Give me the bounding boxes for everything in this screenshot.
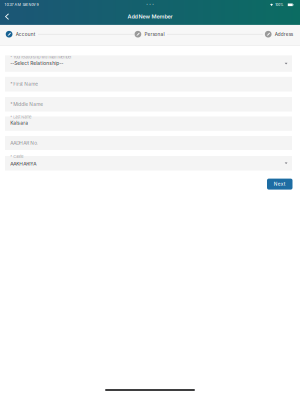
staticText: Address: [275, 31, 293, 37]
staticText: AAKHARIYA: [10, 161, 36, 167]
staticText: Account: [16, 31, 36, 37]
button[interactable]: Personal: [135, 29, 164, 40]
staticText: Personal: [144, 31, 164, 37]
button[interactable]: Back: [1, 11, 13, 23]
staticText: Next: [274, 181, 286, 187]
staticText: * Last Name: [10, 115, 31, 119]
button[interactable]: * Middle Name: [5, 97, 292, 111]
staticText: 10:37 AM Sat Nov 9: [4, 2, 38, 7]
staticText: Kalsara: [10, 120, 28, 126]
staticText: * First Name: [10, 81, 38, 87]
button[interactable]: * Last Name: [5, 116, 292, 131]
button[interactable]: Address: [265, 29, 293, 40]
button[interactable]: Next: [267, 179, 292, 190]
staticText: 100%: [275, 3, 283, 7]
button[interactable]: * First Name: [5, 77, 292, 91]
staticText: • • •: [146, 2, 154, 7]
staticText: * Your relationship with Main Member: [10, 55, 71, 60]
staticText: Add New Member: [127, 13, 172, 20]
button[interactable]: * Caste: [5, 156, 292, 170]
button[interactable]: AADHAR No.: [5, 136, 292, 150]
button[interactable]: Account: [6, 29, 36, 40]
staticText: * Middle Name: [10, 101, 43, 107]
staticText: * Caste: [10, 154, 23, 159]
button[interactable]: * Your relationship with Main Member: [5, 55, 292, 72]
staticText: --Select Relationship--: [10, 60, 63, 66]
staticText: AADHAR No.: [10, 140, 38, 146]
